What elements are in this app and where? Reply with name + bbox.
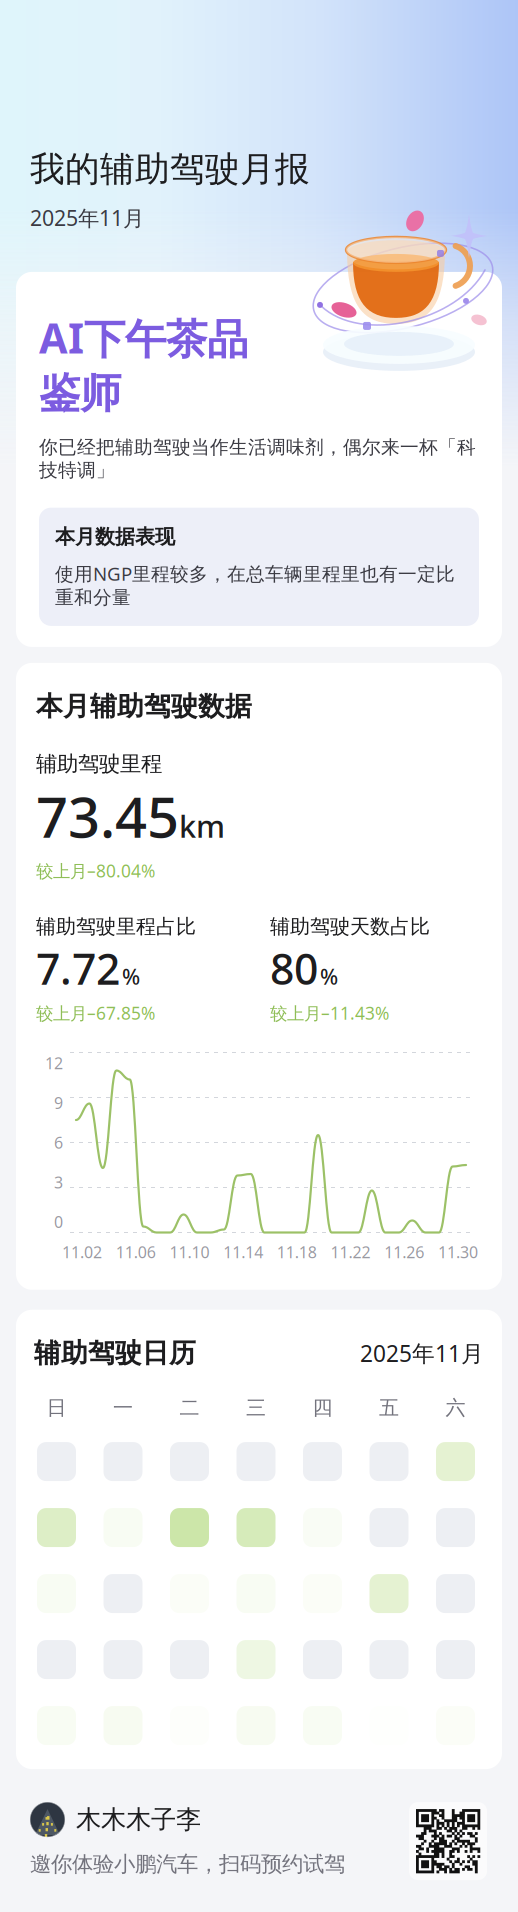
- staticText: 较上月–67.85%: [36, 1001, 155, 1024]
- staticText: 11.22: [331, 1241, 371, 1263]
- staticText: 二: [179, 1395, 199, 1420]
- staticText: km: [179, 805, 225, 846]
- staticText: 本月辅助驾驶数据: [36, 690, 252, 723]
- staticText: 9: [54, 1092, 63, 1113]
- staticText: 你已经把辅助驾驶当作生活调味剂，偶尔来一杯「科技特调」: [39, 436, 476, 482]
- staticText: 三: [246, 1395, 266, 1420]
- staticText: 四: [312, 1395, 332, 1420]
- staticText: 11.26: [384, 1241, 424, 1263]
- staticText: 我的辅助驾驶月报: [30, 148, 310, 191]
- staticText: 较上月–80.04%: [36, 859, 155, 882]
- staticText: %: [122, 962, 140, 991]
- staticText: 11.02: [62, 1241, 102, 1263]
- staticText: 六: [445, 1395, 465, 1420]
- staticText: 鉴师: [39, 368, 121, 419]
- staticText: 7.72: [36, 940, 120, 996]
- staticText: 11.06: [116, 1241, 156, 1263]
- staticText: 11.30: [438, 1241, 478, 1263]
- staticText: 73.45: [36, 779, 179, 853]
- staticText: 一: [113, 1395, 133, 1420]
- staticText: 6: [54, 1132, 63, 1153]
- staticText: 辅助驾驶里程占比: [36, 914, 196, 939]
- staticText: 2025年11月: [30, 204, 144, 232]
- staticText: 使用NGP里程较多，在总车辆里程里也有一定比重和分量: [55, 561, 455, 609]
- staticText: 邀你体验小鹏汽车，扫码预约试驾: [30, 1851, 345, 1877]
- staticText: %: [320, 962, 338, 991]
- staticText: 本月数据表现: [55, 525, 175, 549]
- staticText: 木木木子李: [76, 1804, 201, 1835]
- staticText: 0: [54, 1211, 63, 1232]
- staticText: 12: [45, 1052, 63, 1074]
- staticText: 11.10: [169, 1241, 209, 1263]
- staticText: 较上月–11.43%: [270, 1001, 389, 1024]
- staticText: AI下午茶品: [39, 310, 248, 365]
- staticText: 五: [379, 1395, 399, 1420]
- staticText: 辅助驾驶里程: [36, 751, 162, 777]
- staticText: 80: [270, 940, 318, 996]
- staticText: 2025年11月: [360, 1338, 484, 1368]
- staticText: 11.18: [277, 1241, 317, 1263]
- staticText: 3: [54, 1172, 63, 1193]
- staticText: 辅助驾驶天数占比: [270, 914, 430, 939]
- staticText: 11.14: [223, 1241, 263, 1263]
- staticText: 日: [46, 1395, 66, 1420]
- staticText: 辅助驾驶日历: [34, 1337, 196, 1370]
